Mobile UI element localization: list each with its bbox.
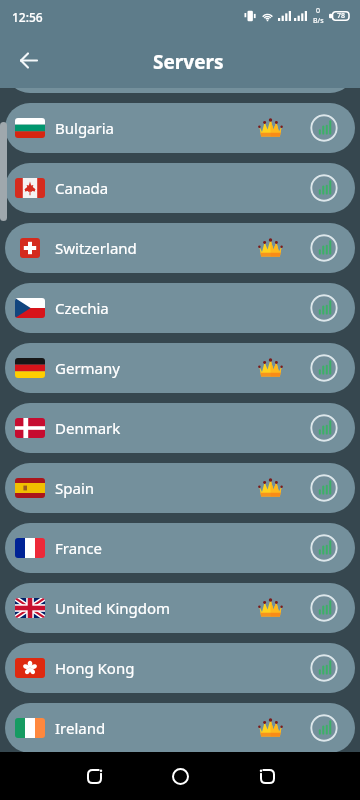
staticText: 12:56 <box>12 9 43 25</box>
staticText: Ireland <box>55 718 106 738</box>
button[interactable] <box>5 88 355 93</box>
button[interactable]: Home <box>159 755 201 797</box>
button[interactable]: Signal strength <box>310 714 338 742</box>
button[interactable]: Switzerland <box>5 223 355 273</box>
button[interactable]: Spain <box>5 463 355 513</box>
staticText: Germany <box>55 358 120 378</box>
button[interactable]: Signal strength <box>310 234 338 262</box>
staticText: United Kingdom <box>55 598 171 618</box>
button[interactable]: Signal strength <box>310 474 338 502</box>
button[interactable]: Back <box>73 755 115 797</box>
staticText: Switzerland <box>55 238 137 258</box>
button[interactable]: Signal strength <box>310 534 338 562</box>
button[interactable]: Germany <box>5 343 355 393</box>
staticText: Canada <box>55 178 109 198</box>
button[interactable]: Back <box>10 42 46 78</box>
button[interactable]: Ireland <box>5 703 355 753</box>
button[interactable]: Czechia <box>5 283 355 333</box>
button[interactable]: Signal strength <box>310 294 338 322</box>
staticText: Bulgaria <box>55 118 115 138</box>
staticText: Servers <box>153 49 224 75</box>
staticText: France <box>55 538 103 558</box>
button[interactable]: Signal strength <box>310 414 338 442</box>
staticText: Spain <box>55 478 95 498</box>
button[interactable]: Hong Kong <box>5 643 355 693</box>
staticText: B/s <box>313 16 324 26</box>
staticText: Hong Kong <box>55 658 135 678</box>
button[interactable]: Denmark <box>5 403 355 453</box>
button[interactable]: Recents <box>246 755 288 797</box>
button[interactable]: Signal strength <box>310 594 338 622</box>
staticText: 78 <box>337 11 346 21</box>
button[interactable]: Signal strength <box>310 654 338 682</box>
staticText: Denmark <box>55 418 121 438</box>
button[interactable]: United Kingdom <box>5 583 355 633</box>
button[interactable]: Signal strength <box>310 174 338 202</box>
button[interactable]: Canada <box>5 163 355 213</box>
button[interactable]: Signal strength <box>310 114 338 142</box>
button[interactable]: Signal strength <box>310 354 338 382</box>
button[interactable]: Bulgaria <box>5 103 355 153</box>
staticText: Czechia <box>55 298 109 318</box>
button[interactable]: France <box>5 523 355 573</box>
staticText: 0 <box>316 6 321 16</box>
